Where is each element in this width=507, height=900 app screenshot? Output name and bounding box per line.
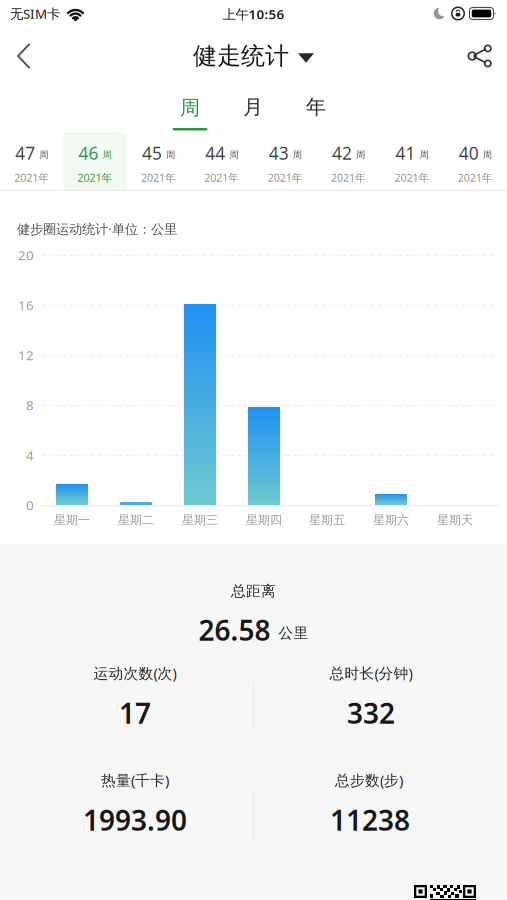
staticText: 41 [395, 141, 415, 164]
button[interactable]: 41 [380, 132, 444, 190]
button[interactable]: 40 [444, 132, 507, 190]
staticText: 总距离 [231, 582, 276, 600]
staticText: 2021年 [14, 170, 49, 185]
staticText: 星期四 [246, 513, 282, 527]
staticText: 周 [293, 149, 302, 161]
staticText: 公里 [278, 624, 308, 642]
staticText: 44 [205, 141, 225, 164]
staticText: 2021年 [458, 170, 493, 185]
button[interactable]: 月 [243, 95, 263, 119]
staticText: 月 [243, 95, 263, 119]
button[interactable]: 46 [63, 132, 127, 190]
staticText: 周 [103, 149, 112, 161]
staticText: 星期一 [54, 513, 90, 527]
staticText: 42 [332, 141, 352, 164]
staticText: 星期五 [309, 513, 345, 527]
button[interactable]: 47 [0, 132, 63, 190]
button[interactable]: Share [468, 32, 507, 80]
staticText: 16 [18, 296, 34, 314]
button[interactable]: 43 [253, 132, 317, 190]
staticText: 星期二 [118, 513, 154, 527]
staticText: 健走统计 [193, 41, 289, 71]
staticText: 46 [79, 141, 99, 164]
button[interactable]: 42 [317, 132, 380, 190]
staticText: 1993.90 [83, 801, 187, 839]
staticText: 周 [180, 95, 200, 120]
staticText: 26.58 [198, 611, 270, 649]
staticText: 43 [269, 141, 289, 164]
staticText: 周 [483, 149, 492, 161]
staticText: 8 [26, 396, 34, 414]
staticText: 星期天 [437, 513, 473, 527]
staticText: 2021年 [268, 170, 303, 185]
staticText: 周 [356, 149, 365, 161]
staticText: 总时长(分钟) [329, 663, 412, 683]
staticText: 周 [229, 149, 238, 161]
staticText: 20 [18, 246, 34, 264]
staticText: 周 [39, 149, 48, 161]
staticText: 11238 [330, 801, 410, 839]
staticText: 2021年 [78, 170, 113, 185]
staticText: 2021年 [204, 170, 239, 185]
button[interactable]: Back [0, 31, 32, 80]
button[interactable]: 45 [127, 132, 190, 190]
staticText: 2021年 [331, 170, 366, 185]
staticText: 年 [306, 95, 326, 119]
staticText: 周 [166, 149, 175, 161]
staticText: 热量(千卡) [101, 770, 169, 790]
staticText: 2021年 [141, 170, 176, 185]
staticText: 周 [419, 149, 428, 161]
staticText: 45 [142, 141, 162, 164]
staticText: 星期三 [182, 513, 218, 527]
staticText: 无SIM卡 [10, 5, 60, 22]
staticText: 总步数(步) [335, 770, 403, 790]
staticText: 运动次数(次) [93, 663, 176, 683]
button[interactable]: 44 [190, 132, 253, 190]
button[interactable]: 健走统计 [193, 41, 314, 71]
staticText: 332 [347, 694, 395, 732]
staticText: 40 [459, 141, 479, 164]
staticText: 2021年 [394, 170, 429, 185]
staticText: 4 [26, 446, 34, 464]
staticText: 47 [15, 141, 35, 164]
staticText: 上午10:56 [222, 5, 284, 23]
staticText: 12 [18, 346, 34, 364]
staticText: 17 [119, 694, 151, 732]
staticText: 健步圈运动统计·单位：公里 [17, 220, 177, 238]
staticText: 0 [26, 496, 34, 514]
staticText: 星期六 [373, 513, 409, 527]
button[interactable]: 年 [306, 95, 326, 119]
button[interactable]: 周 [172, 95, 207, 131]
